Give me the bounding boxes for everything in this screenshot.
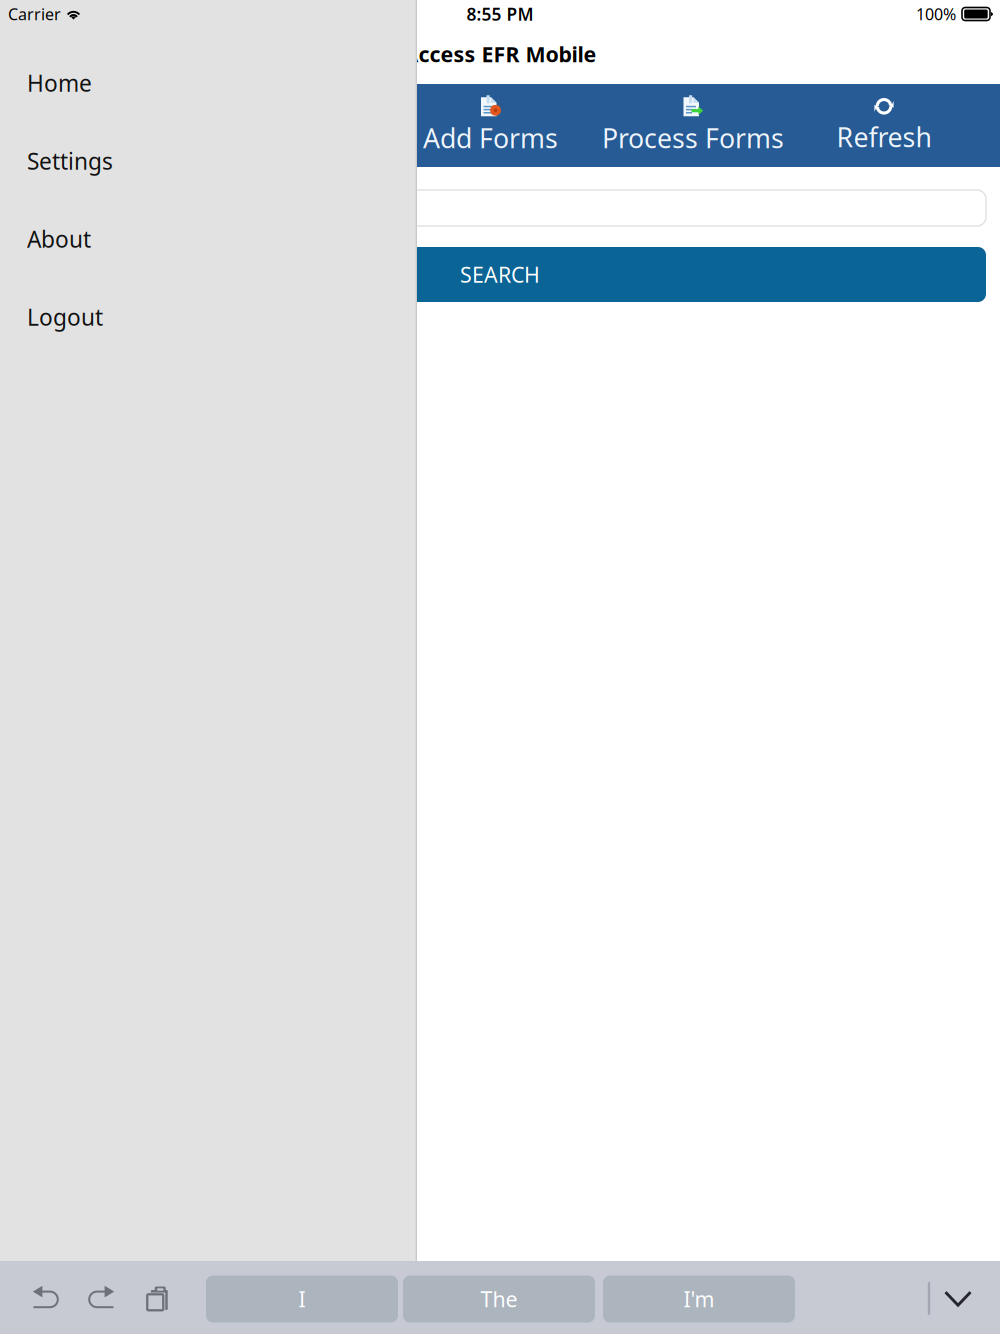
button[interactable]: Process Forms [602, 84, 784, 167]
staticText: Carrier [8, 3, 61, 25]
button[interactable]: The [403, 1275, 595, 1322]
button[interactable]: About [0, 200, 417, 278]
button[interactable]: SEARCH [14, 247, 986, 302]
button[interactable]: Redo [87, 1284, 115, 1309]
button[interactable]: Paste [142, 1283, 167, 1309]
staticText: About [27, 224, 91, 254]
staticText: Logout [27, 302, 103, 332]
staticText: I [298, 1285, 305, 1313]
button[interactable]: Hide keyboard [944, 1287, 971, 1309]
staticText: Settings [27, 146, 113, 176]
button[interactable]: Home [0, 44, 417, 122]
button[interactable]: Undo [32, 1284, 60, 1309]
button[interactable]: I [206, 1275, 398, 1322]
staticText: 8:55 PM [466, 2, 533, 25]
staticText: The [480, 1285, 517, 1313]
staticText: Refresh [836, 119, 931, 155]
staticText: Process Forms [602, 120, 784, 156]
staticText: Add Forms [423, 120, 558, 156]
staticText: Home [27, 68, 92, 98]
staticText: Access EFR Mobile [403, 40, 596, 68]
button[interactable]: Settings [0, 122, 417, 200]
button[interactable]: I'm [603, 1275, 795, 1322]
button[interactable]: Refresh [784, 84, 984, 167]
staticText: I'm [683, 1285, 714, 1313]
button[interactable]: Logout [0, 278, 417, 356]
button[interactable]: Add Forms [379, 84, 602, 167]
staticText: SEARCH [460, 260, 540, 289]
staticText: 100% [916, 3, 956, 25]
